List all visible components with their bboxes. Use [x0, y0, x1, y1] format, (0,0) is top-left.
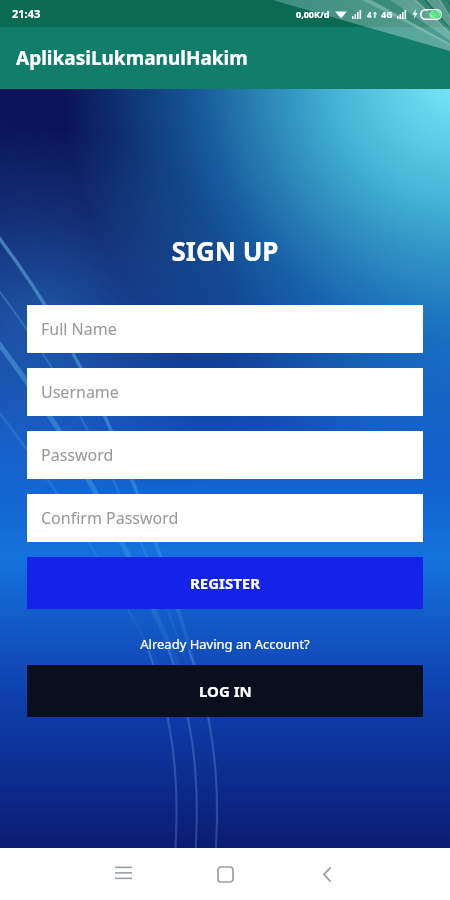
button[interactable]: Back [303, 850, 351, 898]
button[interactable]: Confirm Password [27, 494, 423, 542]
staticText: REGISTER [190, 573, 261, 593]
staticText: 4↑ [367, 9, 379, 20]
button[interactable]: Full Name [27, 305, 423, 353]
staticText: SIGN UP [0, 233, 450, 268]
staticText: Username [41, 381, 119, 403]
staticText: 21:43 [12, 6, 41, 21]
staticText: 0,00K/d [296, 8, 330, 20]
staticText: AplikasiLukmanulHakim [16, 45, 248, 71]
staticText: Full Name [41, 318, 117, 340]
staticText: Confirm Password [41, 507, 179, 529]
staticText: LOG IN [199, 681, 252, 701]
button[interactable]: Recent apps [99, 850, 147, 898]
staticText: Already Having an Account? [0, 635, 450, 653]
button[interactable]: Home [201, 850, 249, 898]
staticText: 4G [381, 8, 393, 20]
button[interactable]: LOG IN [27, 665, 423, 717]
button[interactable]: REGISTER [27, 557, 423, 609]
button[interactable]: Username [27, 368, 423, 416]
staticText: Password [41, 444, 114, 466]
button[interactable]: Password [27, 431, 423, 479]
